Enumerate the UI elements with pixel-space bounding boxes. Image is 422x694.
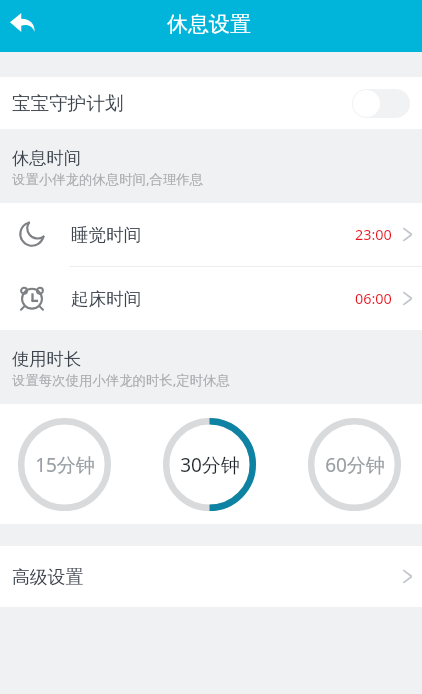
staticText: 睡觉时间 (71, 224, 142, 246)
staticText: 使用时长 (12, 348, 82, 370)
staticText: 宝宝守护计划 (12, 92, 124, 115)
staticText: 06:00 (355, 289, 392, 309)
staticText: 休息设置 (167, 11, 251, 37)
button[interactable]: 起床时间 (0, 267, 422, 330)
button[interactable]: Baby guard plan toggle, off (352, 89, 410, 118)
staticText: 休息时间 (12, 147, 82, 169)
staticText: 23:00 (355, 225, 392, 245)
staticText: 起床时间 (71, 288, 142, 310)
staticText: 设置每次使用小伴龙的时长,定时休息 (12, 371, 230, 389)
staticText: 60分钟 (325, 452, 385, 478)
staticText: 高级设置 (12, 566, 84, 588)
button[interactable]: 30分钟 (163, 418, 256, 511)
staticText: 15分钟 (35, 452, 95, 478)
staticText: 设置小伴龙的休息时间,合理作息 (12, 170, 204, 188)
button[interactable]: Back (0, 0, 44, 52)
button[interactable]: 睡觉时间 (0, 203, 422, 266)
staticText: 30分钟 (180, 452, 240, 478)
button[interactable]: 15分钟 (18, 418, 111, 511)
button[interactable]: 宝宝守护计划 (0, 77, 422, 129)
button[interactable]: 高级设置 (0, 546, 422, 607)
button[interactable]: 60分钟 (308, 418, 401, 511)
